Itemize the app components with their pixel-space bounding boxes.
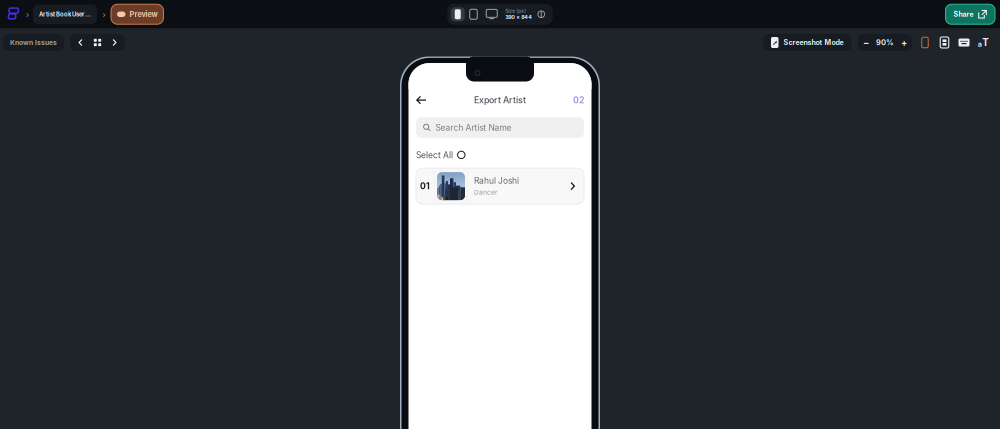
staticText: −: [863, 37, 869, 48]
staticText: +: [901, 37, 907, 48]
staticText: 01: [420, 181, 430, 191]
staticText: Artist Book User ...: [39, 11, 91, 18]
staticText: 390 × 844: [505, 14, 532, 20]
staticText: 02: [573, 95, 584, 105]
button[interactable]: Preview: [111, 4, 163, 24]
button[interactable]: Next screen: [106, 34, 123, 51]
staticText: 90%: [876, 38, 894, 47]
staticText: ›: [102, 9, 105, 19]
staticText: Search Artist Name: [435, 122, 511, 133]
button[interactable]: Known Issues: [3, 34, 64, 51]
button[interactable]: Select All: [416, 150, 466, 160]
button[interactable]: Zoom out: [862, 35, 870, 50]
staticText: Size (px): [505, 8, 526, 14]
staticText: Dancer: [474, 188, 498, 196]
button[interactable]: Tablet size: [466, 7, 481, 21]
button[interactable]: Artist Book User ...: [33, 4, 97, 24]
button[interactable]: All screens: [89, 34, 106, 51]
button[interactable]: Search Artist Name: [416, 117, 584, 138]
button[interactable]: Phone size: [451, 7, 465, 21]
staticText: T: [982, 36, 989, 48]
button[interactable]: Typography: [977, 35, 990, 49]
staticText: Export Artist: [474, 95, 526, 105]
button[interactable]: Back: [416, 91, 434, 109]
button[interactable]: 02: [566, 91, 584, 109]
staticText: ›: [26, 9, 29, 19]
button[interactable]: Info: [533, 10, 549, 18]
staticText: Rahul Joshi: [474, 176, 519, 186]
button[interactable]: Zoom in: [900, 35, 908, 50]
button[interactable]: Save: [938, 35, 951, 49]
button[interactable]: Desktop size: [482, 7, 501, 21]
button[interactable]: Share: [945, 4, 995, 24]
button[interactable]: Previous screen: [72, 34, 89, 51]
staticText: Share: [953, 10, 973, 18]
staticText: Preview: [129, 10, 157, 19]
button[interactable]: Home: [5, 5, 22, 24]
staticText: a: [978, 40, 982, 48]
button[interactable]: 01: [416, 168, 584, 204]
staticText: Known Issues: [10, 38, 57, 47]
staticText: Screenshot Mode: [783, 38, 843, 47]
button[interactable]: Phone preview: [918, 35, 931, 49]
button[interactable]: Screenshot Mode: [763, 34, 851, 51]
staticText: Select All: [416, 150, 453, 160]
button[interactable]: Layout: [957, 35, 970, 49]
